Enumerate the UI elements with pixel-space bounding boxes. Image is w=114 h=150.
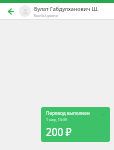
button[interactable]: Перевод выполнен: [41, 107, 110, 142]
staticText: Булат Габдулханович Ш.: [34, 5, 99, 12]
button[interactable]: Contact avatar: [19, 5, 31, 17]
button[interactable]: Back: [3, 4, 17, 18]
staticText: Перевод выполнен: [46, 110, 90, 116]
staticText: был(а) давно: [34, 13, 58, 18]
staticText: 200 ₽: [46, 125, 72, 139]
staticText: 1 мар, 13:39: [46, 117, 68, 122]
